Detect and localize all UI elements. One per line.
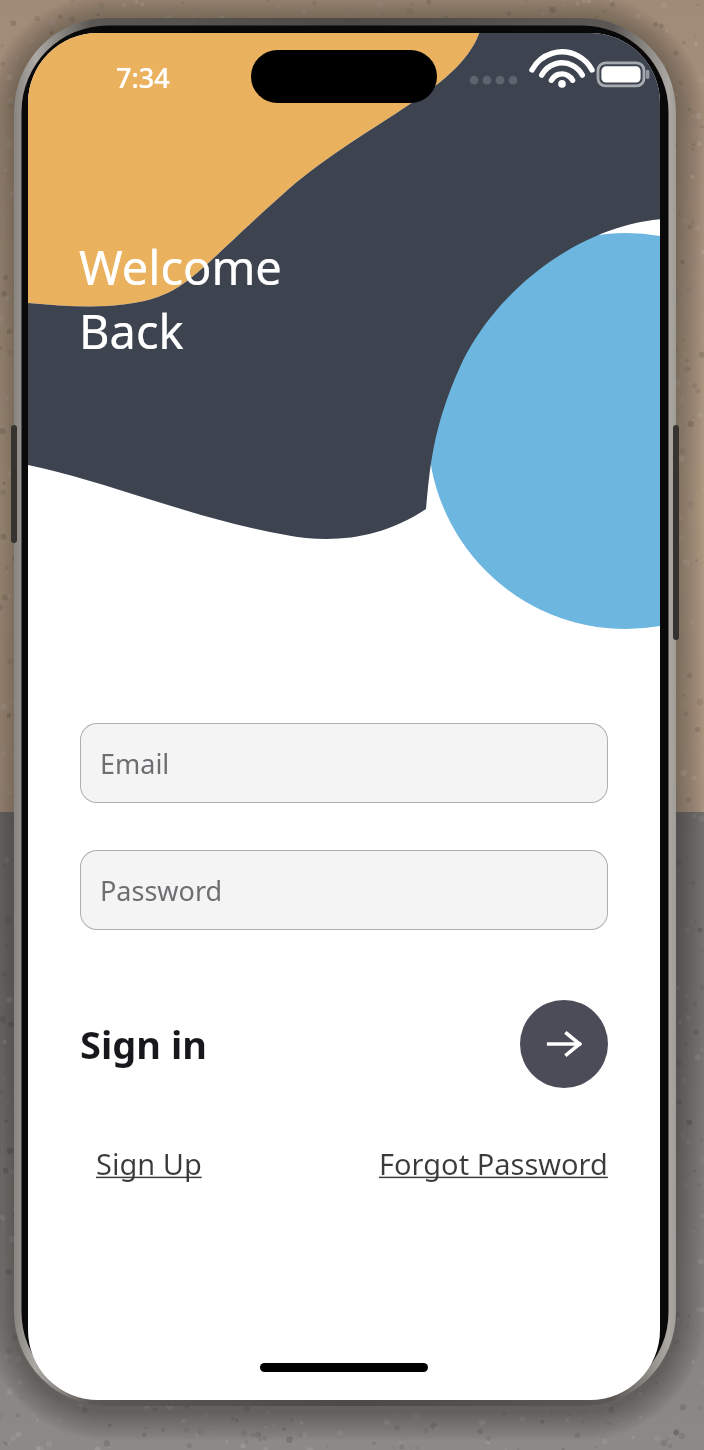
- staticText: Password: [100, 872, 223, 909]
- staticText: Forgot Password: [379, 1144, 608, 1183]
- staticText: Welcome: [79, 235, 282, 299]
- staticText: Back: [79, 299, 184, 363]
- button[interactable]: Forgot Password: [379, 1144, 608, 1183]
- staticText: Sign Up: [96, 1144, 202, 1183]
- button[interactable]: Password: [80, 850, 608, 930]
- button[interactable]: Sign in: [80, 1010, 207, 1078]
- button[interactable]: Sign in: [520, 1000, 608, 1088]
- button[interactable]: Sign Up: [96, 1144, 202, 1183]
- staticText: 7:34: [116, 59, 170, 96]
- staticText: Sign in: [80, 1018, 207, 1070]
- staticText: Email: [100, 745, 170, 782]
- button[interactable]: Email: [80, 723, 608, 803]
